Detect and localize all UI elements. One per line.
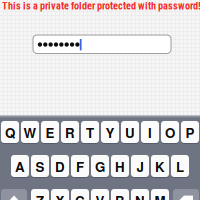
staticText: E (45, 123, 54, 142)
button[interactable]: O (161, 121, 179, 143)
staticText: Z (36, 191, 44, 200)
button[interactable]: Q (1, 121, 19, 143)
staticText: This is a private folder protected with … (2, 0, 200, 12)
staticText: O (165, 123, 175, 142)
button[interactable]: M (151, 189, 169, 200)
button[interactable]: T (81, 121, 99, 143)
staticText: V (95, 191, 104, 200)
staticText: Q (5, 123, 15, 142)
staticText: B (115, 191, 125, 200)
button[interactable]: Delete (173, 189, 199, 200)
staticText: Y (105, 123, 114, 142)
staticText: K (155, 157, 165, 176)
staticText: H (115, 157, 125, 176)
button[interactable]: B (111, 189, 129, 200)
button[interactable]: J (131, 155, 149, 177)
button[interactable]: H (111, 155, 129, 177)
staticText: X (55, 191, 64, 200)
button[interactable]: G (91, 155, 109, 177)
staticText: W (23, 123, 36, 142)
staticText: T (86, 123, 94, 142)
staticText: I (148, 123, 152, 142)
staticText: F (76, 157, 84, 176)
button[interactable]: E (41, 121, 59, 143)
button[interactable]: X (51, 189, 69, 200)
button[interactable]: Z (31, 189, 49, 200)
button[interactable]: Y (101, 121, 119, 143)
staticText: U (125, 123, 135, 142)
button[interactable]: L (171, 155, 189, 177)
button[interactable]: D (51, 155, 69, 177)
button[interactable]: W (21, 121, 39, 143)
button[interactable]: P (181, 121, 199, 143)
staticText: P (185, 123, 194, 142)
button[interactable]: K (151, 155, 169, 177)
button[interactable]: A (11, 155, 29, 177)
staticText: C (75, 191, 85, 200)
button[interactable]: R (61, 121, 79, 143)
button[interactable]: C (71, 189, 89, 200)
staticText: M (154, 191, 165, 200)
staticText: J (136, 157, 143, 176)
staticText: D (55, 157, 65, 176)
button[interactable]: S (31, 155, 49, 177)
button[interactable]: V (91, 189, 109, 200)
staticText: L (176, 157, 184, 176)
button[interactable]: U (121, 121, 139, 143)
staticText: S (35, 157, 44, 176)
button[interactable]: F (71, 155, 89, 177)
button[interactable]: Shift (1, 189, 27, 200)
staticText: G (95, 157, 105, 176)
staticText: A (15, 157, 25, 176)
staticText: R (65, 123, 75, 142)
button[interactable]: N (131, 189, 149, 200)
button[interactable]: I (141, 121, 159, 143)
staticText: N (135, 191, 145, 200)
button[interactable]: Password (33, 35, 171, 53)
